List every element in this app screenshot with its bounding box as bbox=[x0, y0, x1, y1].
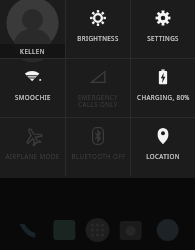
button[interactable]: Brightness bbox=[66, 0, 130, 58]
staticText: SETTINGS bbox=[147, 34, 179, 42]
staticText: LOCATION bbox=[146, 152, 180, 160]
button[interactable]: Mobile signal bbox=[66, 59, 130, 117]
staticText: BRIGHTNESS bbox=[77, 34, 119, 42]
button[interactable]: Bluetooth bbox=[66, 118, 130, 176]
staticText: KELLEN bbox=[20, 47, 45, 55]
staticText: AIRPLANE MODE bbox=[5, 152, 60, 160]
staticText: CHARGING, 80% bbox=[137, 93, 190, 101]
button[interactable]: Settings bbox=[131, 0, 195, 58]
staticText: BLUETOOTH OFF bbox=[71, 152, 126, 160]
button[interactable]: KELLEN bbox=[0, 0, 65, 58]
staticText: SMOOCHIE bbox=[15, 93, 51, 101]
button[interactable]: Wi-Fi bbox=[0, 59, 65, 117]
staticText: EMERGENCY CALLS ONLY bbox=[69, 93, 127, 109]
button[interactable]: Location bbox=[131, 118, 195, 176]
button[interactable]: Airplane mode bbox=[0, 118, 65, 176]
button[interactable]: Battery bbox=[131, 59, 195, 117]
